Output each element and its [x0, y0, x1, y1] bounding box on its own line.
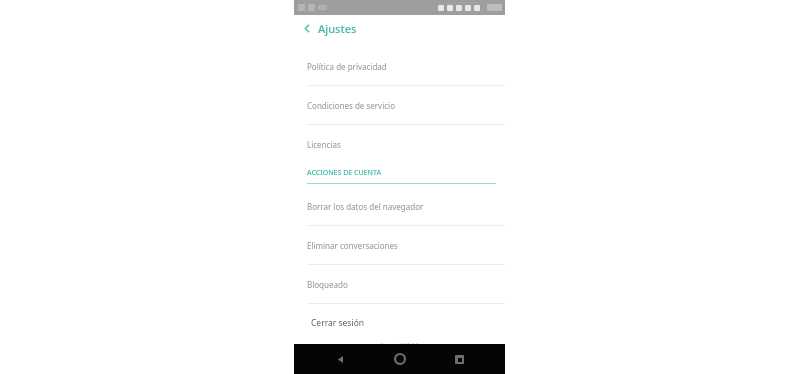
staticText: Eliminar conversaciones — [307, 240, 398, 251]
staticText: Política de privacidad — [307, 61, 387, 72]
staticText: Soporte 10.0.1.0 — [380, 342, 419, 344]
button[interactable]: Borrar los datos del navegador — [294, 187, 505, 225]
staticText: Licencias — [307, 139, 341, 150]
button[interactable]: Licencias — [294, 125, 505, 163]
staticText: Condiciones de servicio — [307, 100, 395, 111]
button[interactable]: Eliminar conversaciones — [294, 226, 505, 264]
button[interactable]: Recent apps — [446, 346, 472, 372]
button[interactable]: Política de privacidad — [294, 47, 505, 85]
button[interactable]: Cerrar sesión — [294, 304, 505, 342]
button[interactable]: Back — [296, 17, 318, 39]
staticText: ACCIONES DE CUENTA — [307, 168, 381, 178]
button[interactable]: Home — [387, 346, 413, 372]
staticText: Borrar los datos del navegador — [307, 201, 424, 212]
button[interactable]: Back — [327, 346, 353, 372]
staticText: Ajustes — [318, 21, 357, 36]
staticText: Bloqueado — [307, 279, 348, 290]
button[interactable]: Condiciones de servicio — [294, 86, 505, 124]
staticText: Cerrar sesión — [311, 317, 365, 329]
button[interactable]: Bloqueado — [294, 265, 505, 303]
